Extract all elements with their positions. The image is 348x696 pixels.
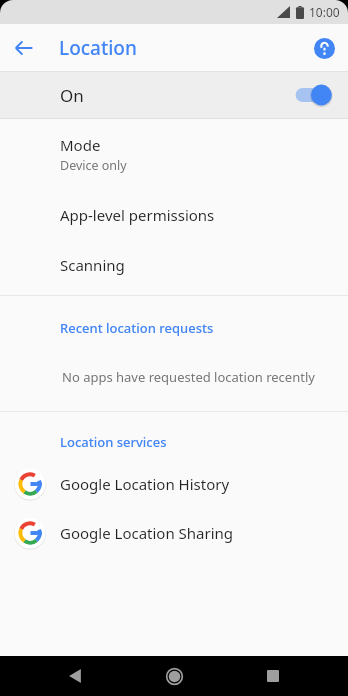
staticText: Google Location Sharing [60, 523, 234, 543]
button[interactable]: App-level permissions [0, 202, 348, 228]
staticText: Google Location History [60, 474, 230, 494]
button[interactable]: Back [6, 30, 42, 66]
button[interactable]: Google Location Sharing [0, 513, 348, 553]
button[interactable]: Home [150, 656, 198, 696]
button[interactable]: Help [307, 31, 341, 65]
staticText: 10:00 [309, 4, 340, 20]
button[interactable]: Back [51, 656, 99, 696]
staticText: Location [59, 35, 137, 61]
button[interactable]: Scanning [0, 252, 348, 278]
staticText: Recent location requests [60, 319, 214, 337]
button[interactable]: Recent apps [249, 656, 297, 696]
staticText: No apps have requested location recently [62, 368, 315, 386]
staticText: Mode [60, 135, 101, 155]
button[interactable]: Recent location requests [0, 317, 348, 339]
button[interactable]: Mode [0, 131, 348, 180]
staticText: Scanning [60, 255, 125, 275]
staticText: On [60, 84, 84, 107]
staticText: App-level permissions [60, 205, 215, 225]
button[interactable]: Google Location History [0, 464, 348, 504]
button[interactable]: On [0, 72, 348, 118]
staticText: Device only [60, 157, 127, 174]
staticText: Location services [60, 433, 167, 451]
